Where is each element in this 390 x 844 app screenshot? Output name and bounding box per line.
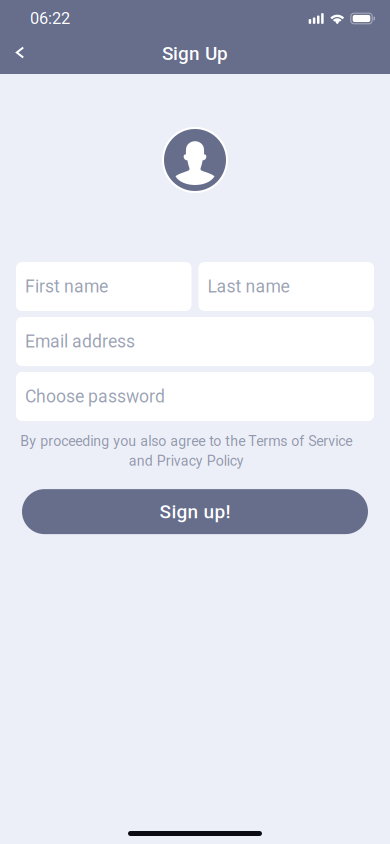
staticText: By proceeding you also agree to the Term…: [20, 433, 352, 469]
staticText: Sign Up: [162, 42, 228, 65]
staticText: First name: [25, 276, 108, 297]
staticText: Sign up!: [159, 500, 230, 523]
button[interactable]: Last name: [198, 262, 374, 311]
button[interactable]: Sign up!: [22, 489, 368, 534]
staticText: Last name: [207, 276, 289, 297]
button[interactable]: Choose password: [16, 372, 374, 421]
staticText: 06:22: [30, 9, 70, 28]
button[interactable]: First name: [16, 262, 191, 311]
staticText: Email address: [25, 331, 135, 352]
button[interactable]: Back: [0, 37, 40, 74]
button[interactable]: Email address: [16, 317, 374, 366]
staticText: Choose password: [25, 386, 165, 407]
